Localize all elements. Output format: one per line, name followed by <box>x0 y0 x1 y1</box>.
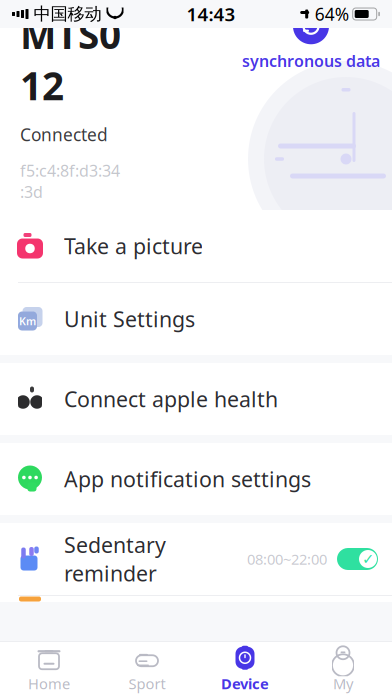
staticText: App notification settings <box>64 465 311 493</box>
button[interactable]: Sedentary reminder toggle <box>337 548 378 570</box>
button[interactable]: My <box>294 642 392 696</box>
staticText: 14:43 <box>187 2 236 26</box>
staticText: Unit Settings <box>64 305 195 333</box>
staticText: synchronous data <box>242 50 380 71</box>
staticText: Device <box>221 674 269 693</box>
staticText: 中国移动 <box>33 3 101 25</box>
staticText: Sedentary reminder <box>64 531 166 587</box>
button[interactable]: Km <box>0 283 392 355</box>
staticText: Take a picture <box>64 232 203 260</box>
button[interactable]: Home <box>0 642 98 696</box>
button[interactable]: App notification settings <box>0 443 392 515</box>
staticText: Connected <box>20 123 108 146</box>
staticText: Km <box>19 314 36 328</box>
staticText: Sport <box>128 674 165 693</box>
staticText: My <box>333 674 353 693</box>
button[interactable]: synchronous data <box>242 8 380 71</box>
button[interactable]: Unbound <box>20 214 106 242</box>
button[interactable]: Sport <box>98 642 196 696</box>
button[interactable]: Device <box>196 642 294 696</box>
staticText: Connect apple health <box>64 385 278 413</box>
staticText: Unbound <box>27 217 99 239</box>
button[interactable]: Connect apple health <box>0 363 392 435</box>
staticText: 64% <box>315 2 349 25</box>
staticText: ✓ <box>362 551 374 567</box>
button[interactable]: Take a picture <box>0 210 392 282</box>
staticText: Home <box>28 674 70 693</box>
button[interactable]: Sedentary reminder <box>0 523 392 595</box>
staticText: 08:00~22:00 <box>247 549 327 569</box>
staticText: MTS012 <box>20 8 121 111</box>
staticText: f5:c4:8f:d3:34:3d <box>20 160 120 202</box>
